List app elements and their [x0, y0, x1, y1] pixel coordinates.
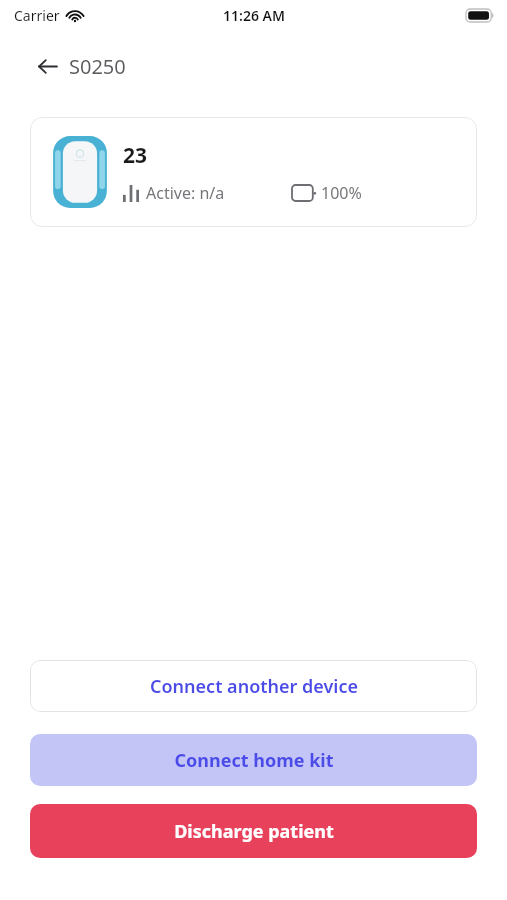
staticText: Connect home kit	[174, 748, 334, 773]
staticText: Active: n/a	[146, 182, 225, 204]
staticText: Carrier	[14, 6, 60, 25]
button[interactable]: Discharge patient	[30, 804, 477, 858]
button[interactable]: Connect home kit	[30, 734, 477, 786]
staticText: Discharge patient	[174, 819, 334, 844]
staticText: 100%	[321, 182, 362, 204]
staticText: S0250	[69, 53, 126, 80]
button[interactable]: Connect another device	[30, 660, 477, 712]
button[interactable]: 23	[30, 117, 477, 227]
staticText: Connect another device	[150, 674, 358, 699]
staticText: 23	[123, 141, 148, 170]
staticText: 11:26 AM	[223, 6, 285, 25]
button[interactable]: Back	[30, 49, 64, 83]
